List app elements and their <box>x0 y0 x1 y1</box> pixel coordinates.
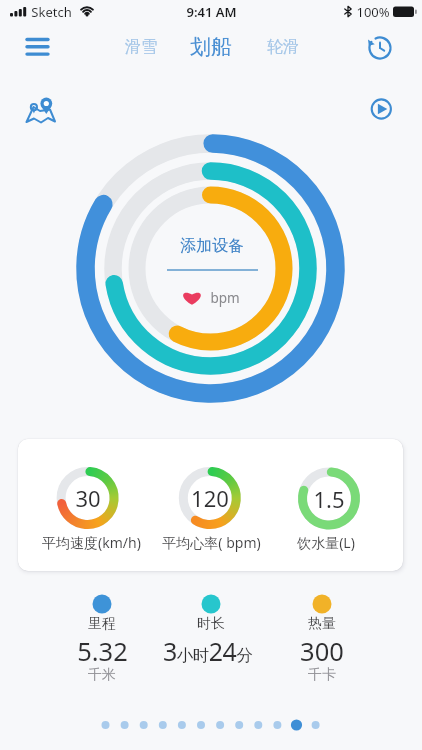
button[interactable] <box>20 32 54 62</box>
staticText: 平均速度(km/h) <box>42 533 141 552</box>
staticText: 30 <box>75 483 101 513</box>
button[interactable] <box>22 92 60 130</box>
staticText: 5.32 <box>77 634 128 669</box>
staticText: 3小时24分 <box>163 634 253 668</box>
staticText: bpm <box>210 289 240 307</box>
staticText: 120 <box>191 483 229 513</box>
staticText: 平均心率( bpm) <box>162 533 261 552</box>
staticText: 饮水量(L) <box>297 533 355 552</box>
button[interactable]: 划船 <box>184 31 238 63</box>
staticText: 添加设备 <box>180 236 244 256</box>
button[interactable] <box>366 94 397 125</box>
staticText: 9:41 AM <box>186 3 237 21</box>
staticText: 时长 <box>197 615 225 633</box>
staticText: 轮滑 <box>267 37 299 57</box>
staticText: 300 <box>300 634 344 669</box>
button[interactable]: 轮滑 <box>257 33 309 61</box>
staticText: 1.5 <box>313 484 345 514</box>
staticText: Sketch <box>31 3 72 21</box>
staticText: 划船 <box>190 34 232 60</box>
staticText: 千卡 <box>308 666 336 684</box>
button[interactable]: 滑雪 <box>115 33 167 61</box>
button[interactable] <box>364 32 396 64</box>
staticText: 100% <box>356 3 390 21</box>
staticText: 里程 <box>88 615 116 633</box>
button[interactable]: 添加设备 <box>163 236 260 312</box>
staticText: 热量 <box>308 615 336 633</box>
staticText: 滑雪 <box>125 37 157 57</box>
staticText: 千米 <box>88 666 116 684</box>
